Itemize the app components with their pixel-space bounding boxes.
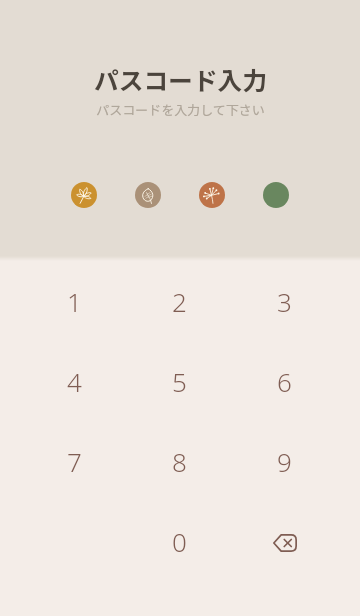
button[interactable]: 5 [127,341,232,421]
staticText: パスコード入力 [94,61,267,97]
button[interactable]: 6 [232,341,337,421]
button[interactable]: 3 [232,261,337,341]
staticText: 5 [172,364,187,399]
button[interactable]: 2 [127,261,232,341]
button[interactable]: 4 [22,341,127,421]
button[interactable]: 9 [232,421,337,501]
staticText: 3 [277,284,292,319]
staticText: 7 [67,444,82,479]
button[interactable]: 8 [127,421,232,501]
staticText: パスコードを入力して下さい [96,100,265,119]
staticText: 6 [277,364,292,399]
staticText: 4 [67,364,82,399]
staticText: 2 [172,284,187,319]
button[interactable]: 0 [127,501,232,581]
button[interactable]: 1 [22,261,127,341]
staticText: 9 [277,444,292,479]
staticText: 1 [67,284,82,319]
button[interactable]: Backspace [232,501,337,581]
staticText: 0 [172,524,187,559]
staticText: 8 [172,444,187,479]
button[interactable]: 7 [22,421,127,501]
